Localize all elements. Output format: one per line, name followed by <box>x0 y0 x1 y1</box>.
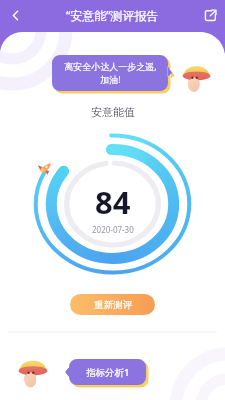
staticText: “安意能”测评报告 <box>66 7 159 23</box>
staticText: 指标分析1 <box>86 366 130 379</box>
button[interactable]: 指标分析1 <box>65 359 146 385</box>
staticText: 84 <box>95 181 131 223</box>
staticText: 安意能值 <box>91 105 135 119</box>
staticText: 2020-07-30 <box>92 224 134 235</box>
button[interactable]: 重新测评 <box>70 294 155 315</box>
staticText: 重新测评 <box>94 299 132 311</box>
button[interactable]: Back <box>0 0 30 30</box>
staticText: 离安全小达人一步之遥, 加油! <box>64 60 157 86</box>
button[interactable]: Share <box>195 0 225 30</box>
